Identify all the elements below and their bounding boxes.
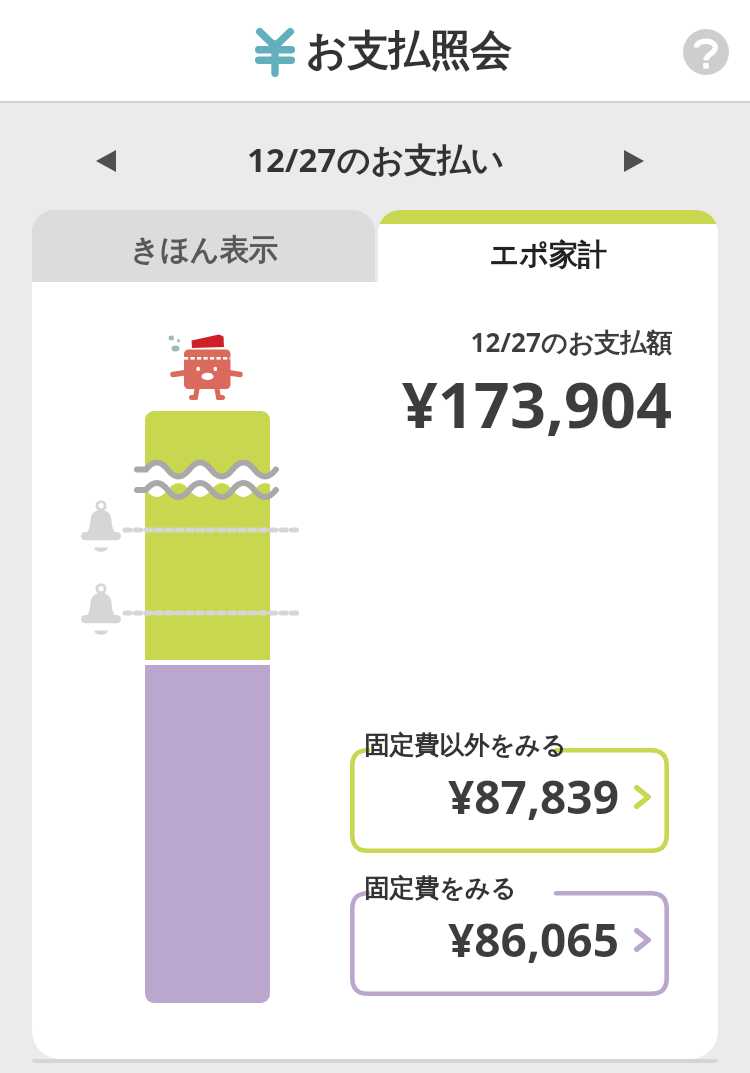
button[interactable]: きほん表示 bbox=[32, 210, 375, 283]
staticText: ¥87,839 bbox=[448, 765, 619, 828]
staticText: お支払照会 bbox=[305, 26, 511, 78]
button[interactable]: ¥87,839 bbox=[350, 748, 669, 853]
button[interactable]: ¥86,065 bbox=[350, 891, 669, 996]
button[interactable]: エポ家計 bbox=[378, 210, 718, 283]
staticText: 固定費をみる bbox=[364, 873, 516, 904]
staticText: きほん表示 bbox=[130, 232, 278, 269]
staticText: 固定費以外をみる bbox=[364, 730, 566, 761]
staticText: 12/27のお支払い bbox=[247, 137, 504, 182]
button[interactable]: Next date bbox=[609, 136, 659, 186]
staticText: エポ家計 bbox=[489, 237, 607, 274]
staticText: ¥86,065 bbox=[448, 908, 619, 971]
button[interactable]: Previous date bbox=[81, 136, 131, 186]
button[interactable]: Help bbox=[683, 29, 729, 75]
staticText: 12/27のお支払額 bbox=[32, 324, 672, 360]
staticText: ¥173,904 bbox=[32, 361, 672, 447]
